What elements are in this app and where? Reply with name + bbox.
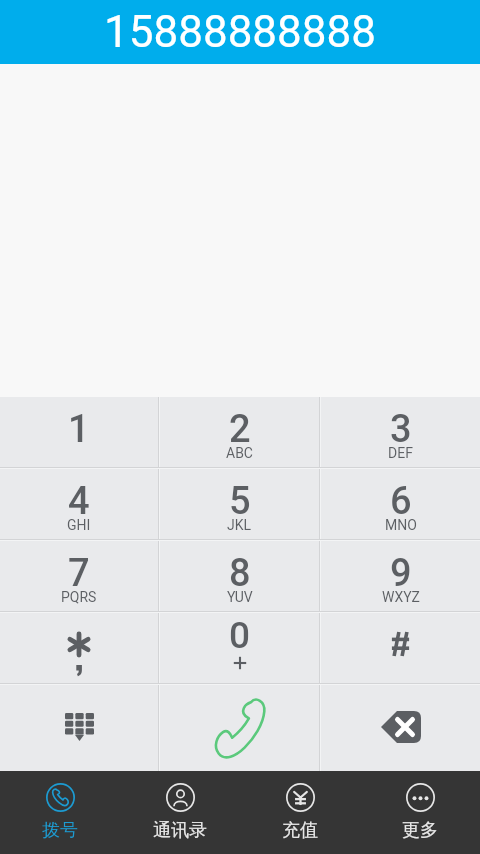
staticText: 9 — [390, 551, 412, 596]
button[interactable]: 充值 — [240, 771, 360, 854]
staticText: WXYZ — [382, 589, 420, 605]
button[interactable]: 1 — [0, 397, 158, 467]
staticText: 拨号 — [42, 819, 78, 842]
staticText: 6 — [390, 479, 412, 524]
staticText: 更多 — [402, 819, 438, 842]
staticText: PQRS — [61, 589, 97, 605]
button[interactable]: 0 — [160, 613, 319, 683]
staticText: DEF — [388, 445, 413, 461]
staticText: YUV — [227, 589, 253, 605]
button[interactable]: 更多 — [360, 771, 480, 854]
button[interactable]: star — [0, 613, 158, 683]
staticText: 5 — [229, 479, 251, 524]
staticText: JKL — [227, 517, 252, 533]
button[interactable]: 8 — [160, 541, 319, 611]
button[interactable]: 2 — [160, 397, 319, 467]
button[interactable]: Hide dialpad — [0, 685, 158, 771]
button[interactable]: 拨号 — [0, 771, 120, 854]
button[interactable]: Delete — [321, 685, 480, 771]
button[interactable]: 7 — [0, 541, 158, 611]
button[interactable]: 3 — [321, 397, 480, 467]
button[interactable]: pound — [321, 613, 480, 683]
staticText: 8 — [229, 551, 251, 596]
button[interactable]: 通讯录 — [120, 771, 240, 854]
button[interactable]: 6 — [321, 469, 480, 539]
staticText: MNO — [385, 517, 417, 533]
button[interactable]: 5 — [160, 469, 319, 539]
staticText: GHI — [67, 517, 91, 533]
button[interactable]: 9 — [321, 541, 480, 611]
staticText: 7 — [68, 551, 90, 596]
staticText: 15888888888 — [104, 6, 377, 58]
staticText: ABC — [226, 445, 253, 461]
staticText: 充值 — [282, 819, 318, 842]
staticText: 1 — [68, 407, 90, 452]
button[interactable]: Call — [160, 685, 319, 771]
staticText: 4 — [68, 479, 90, 524]
staticText: 通讯录 — [153, 819, 207, 842]
staticText: 3 — [390, 407, 412, 452]
staticText: 2 — [229, 407, 251, 452]
staticText: 0 — [229, 614, 251, 657]
button[interactable]: 4 — [0, 469, 158, 539]
